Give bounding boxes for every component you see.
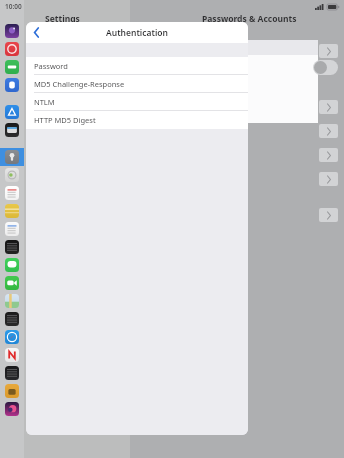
staticText: 10:00 [5, 2, 22, 11]
button[interactable]: App 10 [0, 184, 24, 202]
button[interactable]: MD5 Challenge-Response [26, 75, 248, 93]
button[interactable]: App 12 [0, 220, 24, 238]
button[interactable]: App 18 [0, 328, 24, 346]
button[interactable]: HTTP MD5 Digest [26, 111, 248, 129]
button[interactable]: App 1 [0, 40, 24, 58]
button[interactable]: App 9 [0, 166, 24, 184]
button[interactable]: App 11 [0, 202, 24, 220]
staticText: Password [34, 61, 68, 71]
button[interactable]: App 19 [0, 346, 24, 364]
button[interactable]: App 5 [0, 103, 24, 121]
staticText: Passwords & Accounts [202, 13, 297, 25]
button[interactable]: App 17 [0, 310, 24, 328]
button[interactable]: App 16 [0, 292, 24, 310]
staticText: Authentication [106, 27, 169, 39]
staticText: MD5 Challenge-Response [34, 79, 125, 89]
button[interactable]: App 14 [0, 256, 24, 274]
button[interactable]: Password [26, 57, 248, 75]
button[interactable]: App 0 [0, 22, 24, 40]
staticText: HTTP MD5 Digest [34, 115, 96, 125]
button[interactable]: NTLM [26, 93, 248, 111]
button[interactable]: App 8 [0, 148, 24, 166]
button[interactable]: Back [26, 22, 46, 43]
button[interactable]: App 2 [0, 58, 24, 76]
button[interactable]: App 20 [0, 364, 24, 382]
button[interactable]: App 13 [0, 238, 24, 256]
button[interactable]: App 22 [0, 400, 24, 418]
button[interactable]: App 6 [0, 121, 24, 139]
button[interactable]: App 15 [0, 274, 24, 292]
staticText: NTLM [34, 97, 55, 107]
button[interactable]: App 3 [0, 76, 24, 94]
button[interactable]: App 21 [0, 382, 24, 400]
staticText: Settings [45, 13, 80, 25]
